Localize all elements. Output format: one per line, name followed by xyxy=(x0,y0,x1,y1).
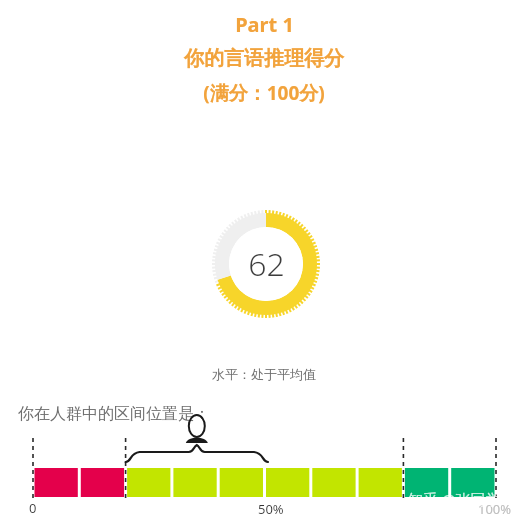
staticText: (满分：100分) xyxy=(203,80,325,106)
staticText: Part 1 xyxy=(235,11,294,38)
button[interactable]: Score gauge 62 xyxy=(206,204,326,324)
staticText: 你在人群中的区间位置是： xyxy=(18,404,210,424)
staticText: 100% xyxy=(478,500,512,518)
staticText: 50% xyxy=(258,500,284,518)
staticText: 62 xyxy=(248,242,285,286)
staticText: 水平：处于平均值 xyxy=(0,366,528,382)
staticText: 知乎 @张同学 xyxy=(408,489,501,509)
staticText: 0 xyxy=(29,499,37,517)
staticText: 你的言语推理得分 xyxy=(184,46,344,71)
